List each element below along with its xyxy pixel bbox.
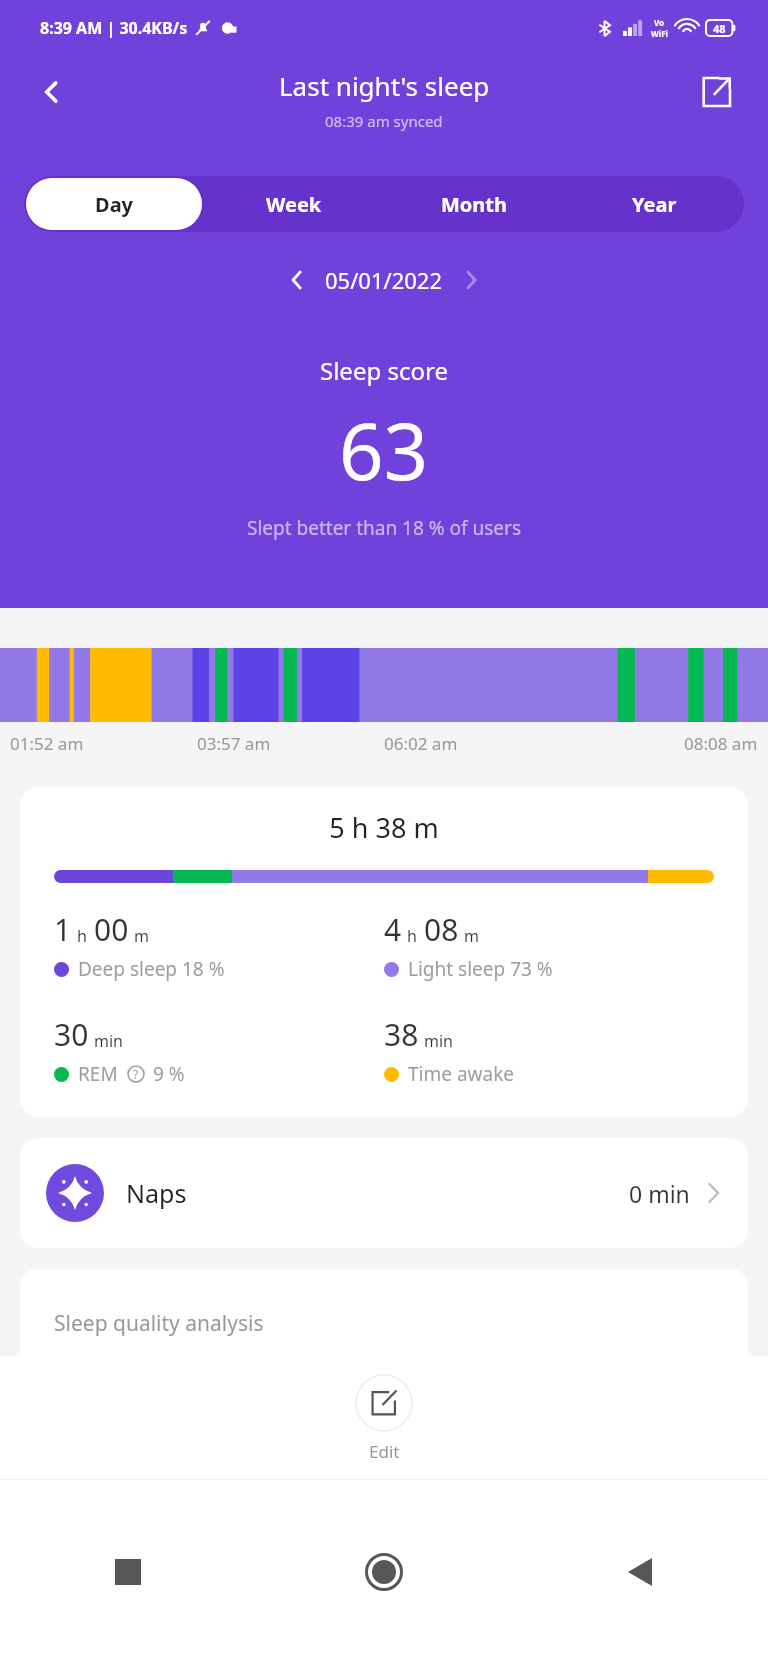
staticText: 5 h 38 m xyxy=(20,809,748,846)
staticText: m xyxy=(464,925,479,947)
staticText: Naps xyxy=(126,1176,629,1210)
staticText: 06:02 am xyxy=(384,732,458,755)
staticText: 08:08 am xyxy=(684,732,758,755)
staticText: ? xyxy=(133,1066,139,1082)
staticText: h xyxy=(77,925,87,947)
button[interactable]: Next day xyxy=(449,258,493,302)
staticText: 38 xyxy=(384,1014,419,1055)
staticText: 48 xyxy=(713,21,726,36)
staticText: Sleep quality analysis xyxy=(54,1309,264,1338)
staticText: Sleep score xyxy=(320,354,448,387)
button[interactable]: Back xyxy=(26,66,78,118)
staticText: h xyxy=(407,925,417,947)
button[interactable]: REM info xyxy=(125,1063,147,1085)
button[interactable]: Recent apps xyxy=(0,1480,256,1664)
staticText: Year xyxy=(632,191,677,218)
staticText: min xyxy=(424,1030,453,1052)
staticText: Week xyxy=(266,191,322,218)
button[interactable]: Week xyxy=(206,178,382,230)
button[interactable]: Month xyxy=(386,178,562,230)
button[interactable]: Previous day xyxy=(275,258,319,302)
staticText: Light sleep 73 % xyxy=(408,956,553,982)
staticText: Edit xyxy=(369,1440,400,1463)
staticText: Time awake xyxy=(408,1061,515,1087)
staticText: 63 xyxy=(339,397,429,503)
staticText: 01:52 am xyxy=(10,732,84,755)
staticText: Last night's sleep xyxy=(279,68,490,103)
staticText: Month xyxy=(441,191,508,218)
staticText: WiFi xyxy=(651,28,668,39)
button[interactable]: Edit xyxy=(333,1370,435,1467)
staticText: 08:39 am synced xyxy=(325,111,443,131)
button[interactable]: Naps xyxy=(20,1138,748,1248)
staticText: 05/01/2022 xyxy=(325,265,443,295)
staticText: 0 min xyxy=(629,1178,690,1209)
staticText: Day xyxy=(95,191,134,218)
staticText: 08 xyxy=(424,909,459,950)
staticText: 4 xyxy=(384,909,402,950)
button[interactable]: Share xyxy=(688,64,744,120)
staticText: 9 % xyxy=(153,1061,185,1087)
staticText: Deep sleep 18 % xyxy=(78,956,225,982)
staticText: m xyxy=(134,925,149,947)
button[interactable]: Day xyxy=(26,178,202,230)
staticText: Vo xyxy=(654,17,665,28)
button[interactable]: Year xyxy=(566,178,742,230)
staticText: 00 xyxy=(94,909,129,950)
staticText: REM xyxy=(78,1061,118,1087)
staticText: 30 xyxy=(54,1014,89,1055)
staticText: min xyxy=(94,1030,123,1052)
staticText: Slept better than 18 % of users xyxy=(247,515,521,541)
staticText: 8:39 AM | 30.4KB/s xyxy=(40,17,188,39)
staticText: 1 xyxy=(54,909,72,950)
staticText: 03:57 am xyxy=(197,732,271,755)
button[interactable]: Back xyxy=(512,1480,768,1664)
button[interactable]: Home xyxy=(256,1480,512,1664)
